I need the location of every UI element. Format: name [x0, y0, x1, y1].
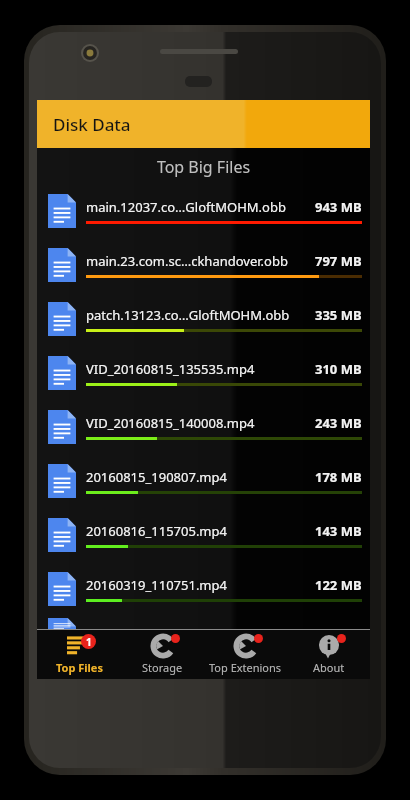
- button[interactable]: patch.13123.co…GloftMOHM.obb: [37, 292, 370, 346]
- staticText: 122 MB: [315, 576, 362, 594]
- staticText: 243 MB: [315, 414, 362, 432]
- button[interactable]: VID_20160815_135535.mp4: [37, 346, 370, 400]
- staticText: 335 MB: [315, 306, 362, 324]
- staticText: 797 MB: [315, 252, 362, 270]
- staticText: main.23.com.sc…ckhandover.obb: [86, 252, 315, 270]
- staticText: main.12037.co…GloftMOHM.obb: [86, 198, 315, 216]
- staticText: Disk Data: [53, 113, 131, 136]
- staticText: Storage: [142, 660, 183, 675]
- staticText: Top Files: [56, 660, 103, 675]
- button[interactable]: 20160816_115705.mp4: [37, 508, 370, 562]
- staticText: 20160319_110751.mp4: [86, 576, 315, 594]
- button[interactable]: Disk Data: [37, 100, 370, 148]
- staticText: 143 MB: [315, 522, 362, 540]
- staticText: 943 MB: [315, 198, 362, 216]
- staticText: About: [313, 660, 345, 675]
- staticText: VID_20160815_135535.mp4: [86, 360, 315, 378]
- button[interactable]: 20160815_190807.mp4: [37, 454, 370, 508]
- button[interactable]: 20160319_110751.mp4: [37, 562, 370, 616]
- staticText: 310 MB: [315, 360, 362, 378]
- staticText: 1: [86, 635, 92, 649]
- button[interactable]: Storage: [121, 630, 204, 679]
- staticText: VID_20160815_140008.mp4: [86, 414, 315, 432]
- staticText: 20160815_190807.mp4: [86, 468, 315, 486]
- button[interactable]: About: [287, 630, 370, 679]
- button[interactable]: Top Files: [37, 630, 121, 679]
- staticText: Top Big Files: [37, 156, 370, 178]
- button[interactable]: Top Extenions: [204, 630, 287, 679]
- button[interactable]: main.23.com.sc…ckhandover.obb: [37, 238, 370, 292]
- button[interactable]: main.12037.co…GloftMOHM.obb: [37, 184, 370, 238]
- staticText: Top Extenions: [209, 660, 282, 675]
- staticText: 178 MB: [315, 468, 362, 486]
- staticText: 20160816_115705.mp4: [86, 522, 315, 540]
- staticText: patch.13123.co…GloftMOHM.obb: [86, 306, 315, 324]
- button[interactable]: VID_20160815_140008.mp4: [37, 400, 370, 454]
